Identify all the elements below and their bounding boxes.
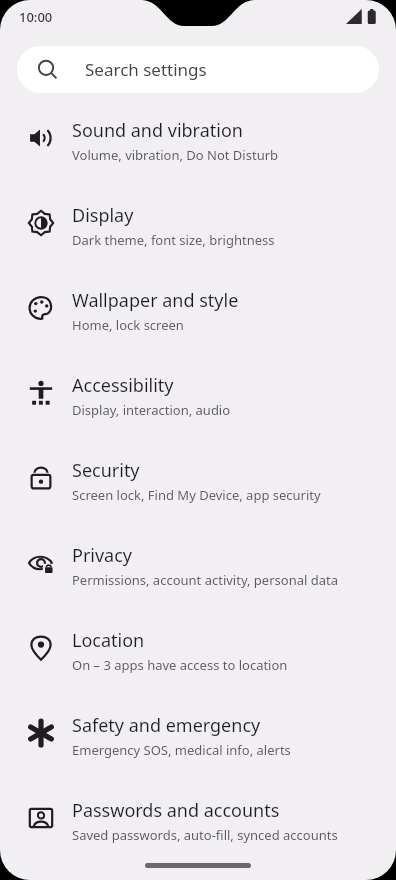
staticText: Privacy (72, 543, 133, 568)
staticText: Security (72, 458, 140, 483)
staticText: Permissions, account activity, personal … (72, 571, 338, 589)
staticText: Screen lock, Find My Device, app securit… (72, 486, 321, 504)
button[interactable]: Privacy (0, 538, 396, 623)
button[interactable]: Security (0, 453, 396, 538)
other: Passwords and accounts (28, 805, 54, 831)
other: Accessibility (28, 380, 54, 406)
staticText: Display (72, 203, 134, 228)
button[interactable]: Sound and vibration (0, 113, 396, 198)
staticText: Search settings (85, 58, 207, 81)
staticText: Passwords and accounts (72, 798, 280, 823)
button[interactable]: Display (0, 198, 396, 283)
staticText: Emergency SOS, medical info, alerts (72, 741, 291, 759)
other: Security (28, 465, 54, 491)
other: Display (28, 210, 54, 236)
button[interactable]: Accessibility (0, 368, 396, 453)
button[interactable]: Safety and emergency (0, 708, 396, 793)
staticText: On – 3 apps have access to location (72, 656, 288, 674)
other: Location (28, 635, 54, 661)
staticText: Dark theme, font size, brightness (72, 231, 275, 249)
staticText: Home, lock screen (72, 316, 184, 334)
button[interactable]: Search settings (17, 46, 379, 93)
staticText: Safety and emergency (72, 713, 261, 738)
other: Wallpaper and style (28, 295, 54, 321)
button[interactable]: Wallpaper and style (0, 283, 396, 368)
staticText: Volume, vibration, Do Not Disturb (72, 146, 279, 164)
button[interactable]: Location (0, 623, 396, 708)
other: Safety and emergency (28, 720, 54, 746)
staticText: 10:00 (19, 8, 53, 26)
button[interactable]: Passwords and accounts (0, 793, 396, 878)
staticText: Location (72, 628, 145, 653)
staticText: Display, interaction, audio (72, 401, 231, 419)
other: Sound and vibration (28, 125, 54, 151)
staticText: Wallpaper and style (72, 288, 239, 313)
staticText: Sound and vibration (72, 118, 243, 143)
staticText: Accessibility (72, 373, 174, 398)
other: Privacy (28, 550, 54, 576)
staticText: Saved passwords, auto-fill, synced accou… (72, 826, 338, 844)
